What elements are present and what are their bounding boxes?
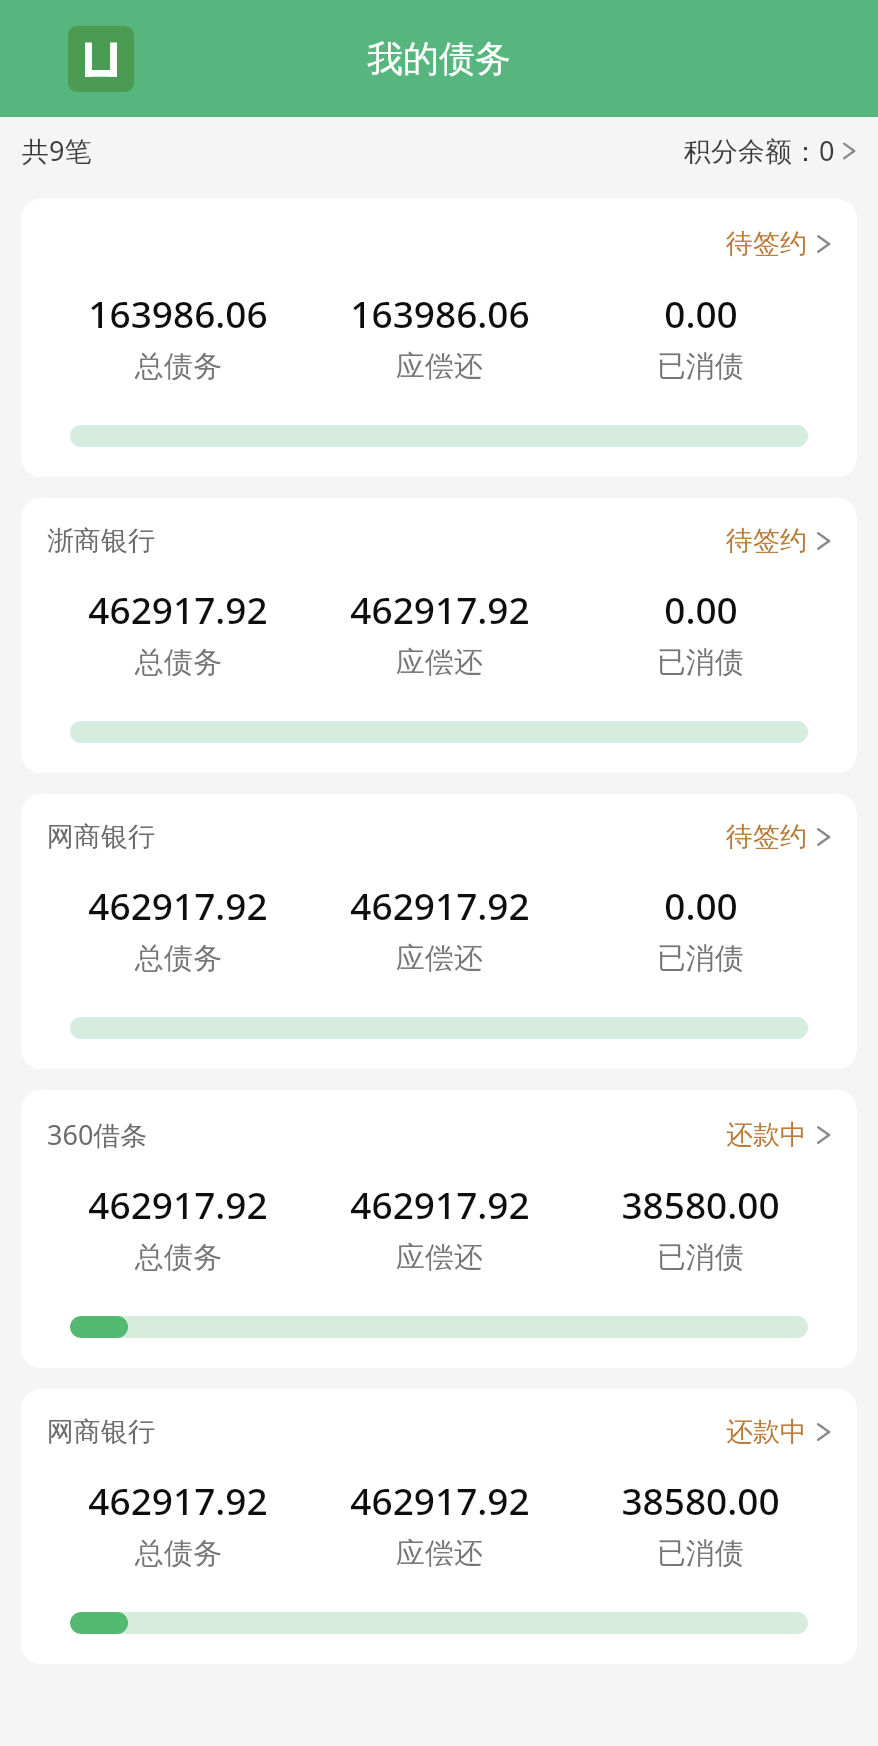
staticText: 462917.92 <box>350 880 530 930</box>
staticText: 还款中 <box>726 1118 807 1152</box>
staticText: 462917.92 <box>350 1475 530 1525</box>
staticText: 462917.92 <box>88 584 268 634</box>
staticText: 已消债 <box>657 940 744 977</box>
staticText: 462917.92 <box>88 880 268 930</box>
button[interactable]: 还款中 <box>726 1118 831 1152</box>
staticText: 已消债 <box>657 644 744 681</box>
staticText: 0.00 <box>664 584 738 634</box>
button[interactable]: 待签约 <box>726 524 831 558</box>
button[interactable]: 积分余额：0 <box>684 126 856 175</box>
staticText: 浙商银行 <box>47 524 155 558</box>
staticText: 0.00 <box>664 880 738 930</box>
button[interactable]: 网商银行 <box>21 1389 857 1664</box>
button[interactable]: 待签约 <box>726 227 831 261</box>
staticText: 应偿还 <box>396 1535 483 1572</box>
staticText: 已消债 <box>657 1239 744 1276</box>
staticText: 总债务 <box>135 1535 222 1572</box>
staticText: 应偿还 <box>396 348 483 385</box>
staticText: 待签约 <box>726 820 807 854</box>
button[interactable]: 待签约 <box>726 820 831 854</box>
button[interactable]: Back <box>68 26 134 92</box>
button[interactable]: 浙商银行 <box>21 498 857 773</box>
button[interactable]: 还款中 <box>726 1415 831 1449</box>
staticText: 总债务 <box>135 1239 222 1276</box>
button[interactable]: 网商银行 <box>21 794 857 1069</box>
staticText: 462917.92 <box>88 1475 268 1525</box>
staticText: 我的债务 <box>367 36 511 81</box>
staticText: 总债务 <box>135 940 222 977</box>
staticText: 应偿还 <box>396 1239 483 1276</box>
staticText: 待签约 <box>726 524 807 558</box>
staticText: 38580.00 <box>621 1179 780 1229</box>
button[interactable]: 360借条 <box>21 1090 857 1368</box>
staticText: 38580.00 <box>621 1475 780 1525</box>
staticText: 积分余额：0 <box>684 132 835 169</box>
staticText: 462917.92 <box>88 1179 268 1229</box>
staticText: 已消债 <box>657 348 744 385</box>
staticText: 163986.06 <box>88 288 268 338</box>
staticText: 应偿还 <box>396 644 483 681</box>
staticText: 163986.06 <box>350 288 530 338</box>
staticText: 0.00 <box>664 288 738 338</box>
button[interactable]: 待签约 <box>21 199 857 477</box>
staticText: 360借条 <box>47 1116 148 1153</box>
staticText: 共9笔 <box>22 132 92 169</box>
staticText: 还款中 <box>726 1415 807 1449</box>
staticText: 总债务 <box>135 348 222 385</box>
staticText: 待签约 <box>726 227 807 261</box>
staticText: 网商银行 <box>47 1415 155 1449</box>
staticText: 462917.92 <box>350 584 530 634</box>
staticText: 应偿还 <box>396 940 483 977</box>
staticText: 已消债 <box>657 1535 744 1572</box>
staticText: 网商银行 <box>47 820 155 854</box>
staticText: 总债务 <box>135 644 222 681</box>
staticText: 462917.92 <box>350 1179 530 1229</box>
